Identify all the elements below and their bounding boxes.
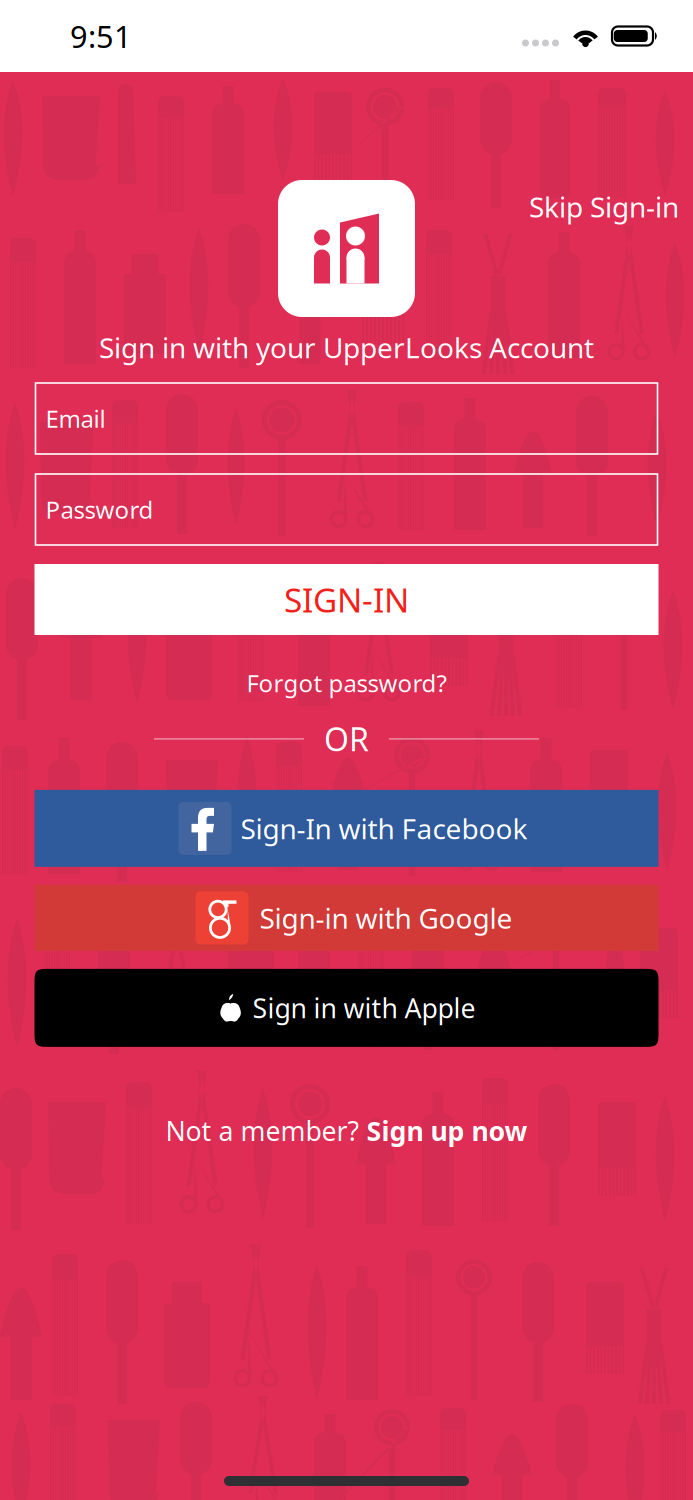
button[interactable]: Forgot password? xyxy=(234,663,458,703)
staticText: Sign up now xyxy=(366,1113,527,1148)
staticText: Forgot password? xyxy=(246,667,446,699)
staticText: Skip Sign-in xyxy=(529,188,679,225)
button[interactable]: Sign-in with Google xyxy=(34,885,658,951)
button[interactable]: Sign in with Apple xyxy=(34,969,658,1047)
staticText: Sign in with Apple xyxy=(252,990,475,1026)
staticText: SIGN-IN xyxy=(284,577,409,622)
staticText: 9:51 xyxy=(70,16,132,56)
staticText: Not a member? xyxy=(165,1113,366,1148)
button[interactable]: Sign-In with Facebook xyxy=(34,790,658,867)
staticText: Sign in with your UpperLooks Account xyxy=(99,329,594,366)
staticText: OR xyxy=(324,718,369,760)
button[interactable]: Skip Sign-in xyxy=(519,180,689,233)
button[interactable]: SIGN-IN xyxy=(34,564,658,635)
staticText: Password xyxy=(45,494,153,525)
staticText: Sign-In with Facebook xyxy=(240,810,527,847)
button[interactable]: Not a member? xyxy=(165,1105,527,1156)
staticText: Email xyxy=(45,403,105,434)
staticText: Sign-in with Google xyxy=(259,899,512,936)
